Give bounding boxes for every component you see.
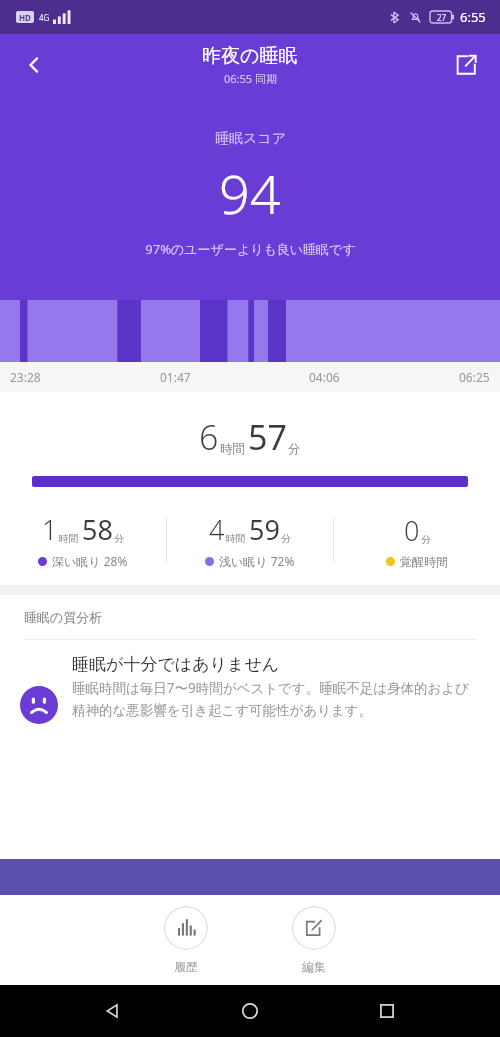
button[interactable]: Recents	[363, 987, 411, 1035]
staticText: 23:28	[10, 369, 41, 385]
staticText: 睡眠の質分析	[24, 609, 103, 625]
staticText: 04:06	[309, 369, 340, 385]
staticText: 分	[421, 534, 431, 546]
button[interactable]: Edit	[269, 906, 359, 974]
staticText: 睡眠時間は毎日7〜9時間がベストです。睡眠不足は身体的および精神的な悪影響を引き…	[72, 679, 480, 719]
staticText: 睡眠が十分ではありません	[72, 654, 280, 675]
staticText: 97%のユーザーよりも良い睡眠です	[145, 240, 356, 258]
staticText: 06:55 同期	[224, 71, 277, 86]
staticText: 時間	[220, 441, 245, 456]
staticText: 4	[209, 511, 225, 548]
staticText: HD	[19, 12, 31, 23]
staticText: 59	[249, 511, 280, 548]
button[interactable]: 1	[0, 511, 166, 569]
button[interactable]: Back	[89, 987, 137, 1035]
staticText: 27	[437, 12, 447, 23]
staticText: 1	[42, 511, 58, 548]
staticText: 覚醒時間	[400, 554, 448, 569]
staticText: 6:55	[460, 8, 486, 26]
staticText: 時間	[226, 533, 246, 545]
staticText: 06:25	[459, 369, 490, 385]
staticText: 分	[288, 441, 301, 456]
button[interactable]: Share	[442, 41, 490, 89]
button[interactable]: 4	[167, 511, 333, 569]
staticText: 編集	[302, 959, 326, 974]
staticText: 58	[82, 511, 113, 548]
staticText: 履歴	[174, 959, 198, 974]
staticText: 深い眠り 28%	[52, 553, 128, 569]
button[interactable]: 0	[334, 512, 500, 569]
staticText: 4G	[39, 12, 50, 23]
staticText: 睡眠スコア	[215, 130, 286, 148]
staticText: 6	[199, 414, 219, 460]
button[interactable]: History	[141, 906, 231, 974]
staticText: 時間	[59, 533, 79, 545]
button[interactable]: 睡眠が十分ではありません	[20, 654, 480, 724]
staticText: 01:47	[160, 369, 191, 385]
staticText: 分	[114, 533, 124, 545]
staticText: 浅い眠り 72%	[219, 553, 295, 569]
staticText: 0	[404, 512, 420, 549]
staticText: 分	[281, 533, 291, 545]
staticText: 昨夜の睡眠	[202, 44, 298, 68]
staticText: 94	[219, 156, 281, 230]
button[interactable]: Home	[226, 987, 274, 1035]
staticText: 57	[248, 414, 287, 460]
button[interactable]: Back	[10, 41, 58, 89]
